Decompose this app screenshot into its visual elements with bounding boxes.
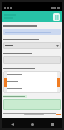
button[interactable]: Home <box>28 120 36 128</box>
button[interactable] <box>3 56 61 64</box>
button[interactable] <box>3 42 61 49</box>
button[interactable]: Account <box>53 13 60 21</box>
button[interactable]: Recent apps <box>48 120 56 128</box>
button[interactable] <box>7 73 57 76</box>
button[interactable]: Account <box>0 11 64 22</box>
button[interactable] <box>3 29 61 35</box>
button[interactable]: App icon <box>56 114 61 115</box>
button[interactable] <box>7 80 57 83</box>
button[interactable] <box>3 99 61 110</box>
button[interactable]: Back <box>8 120 16 128</box>
button[interactable] <box>7 87 57 90</box>
